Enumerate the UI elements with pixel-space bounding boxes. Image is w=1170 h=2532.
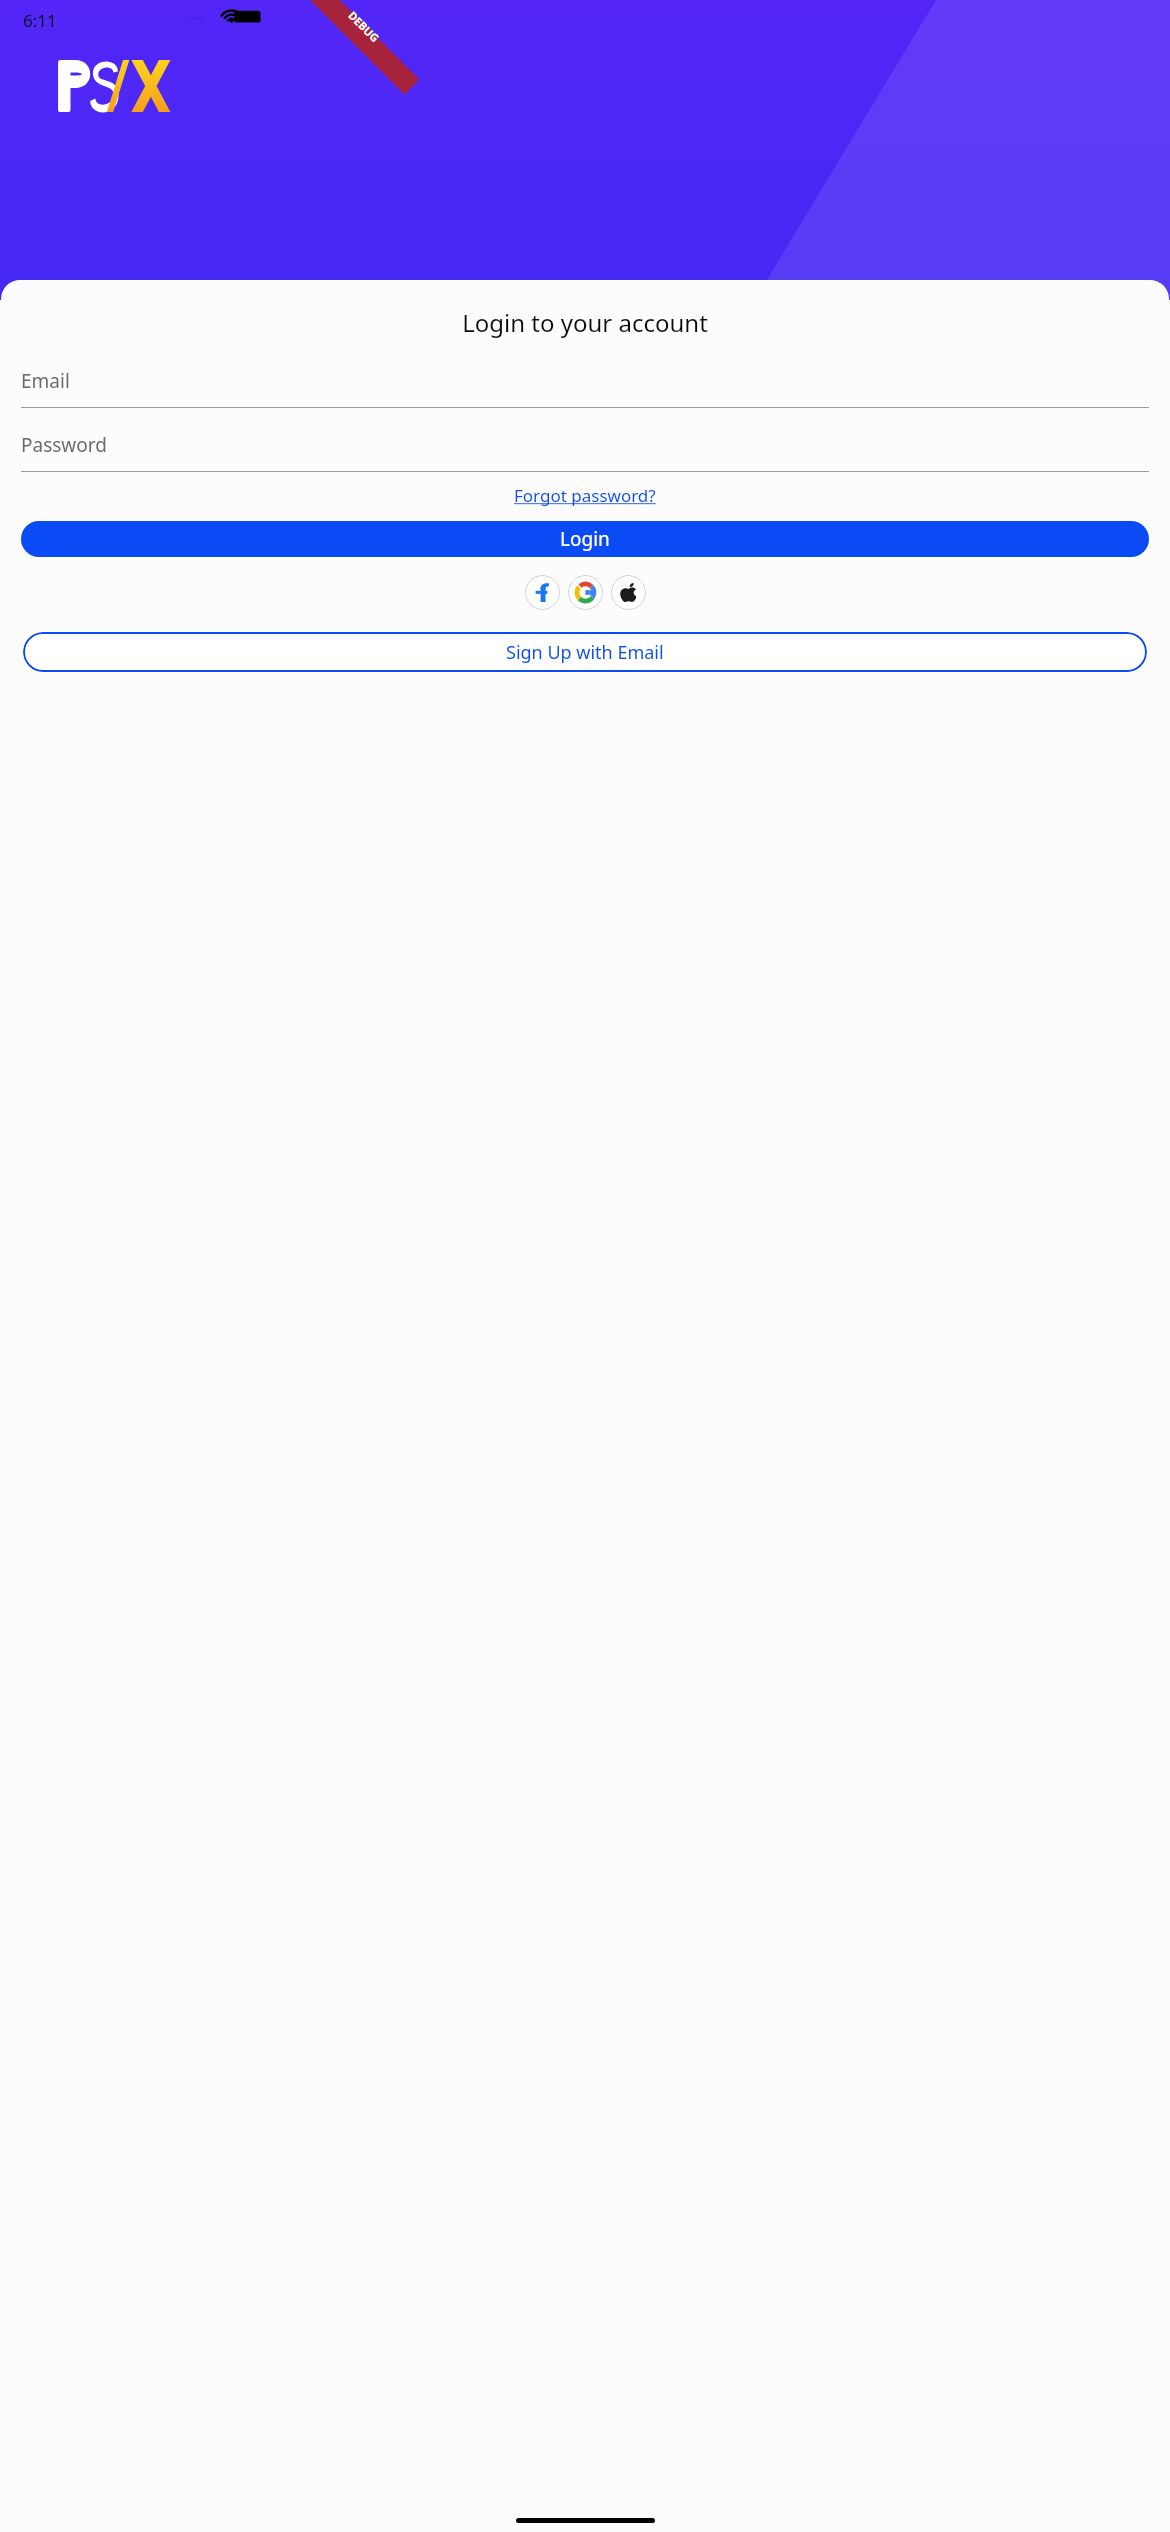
staticText: Login: [560, 526, 610, 552]
button[interactable]: Password: [21, 432, 1149, 472]
button[interactable]: Sign Up with Email: [23, 632, 1147, 672]
button[interactable]: Login: [21, 521, 1149, 557]
staticText: DEBUG: [345, 8, 383, 45]
button[interactable]: Forgot password?: [508, 481, 662, 510]
staticText: 6:11: [23, 9, 57, 32]
staticText: Email: [21, 368, 70, 394]
staticText: Login to your account: [1, 306, 1169, 339]
staticText: Password: [21, 432, 107, 458]
button[interactable]: Sign in with Facebook: [525, 575, 560, 610]
button[interactable]: Sign in with Apple: [611, 575, 646, 610]
button[interactable]: Sign in with Google: [568, 575, 603, 610]
staticText: Sign Up with Email: [506, 640, 664, 665]
button[interactable]: Email: [21, 368, 1149, 408]
staticText: Forgot password?: [514, 484, 656, 507]
